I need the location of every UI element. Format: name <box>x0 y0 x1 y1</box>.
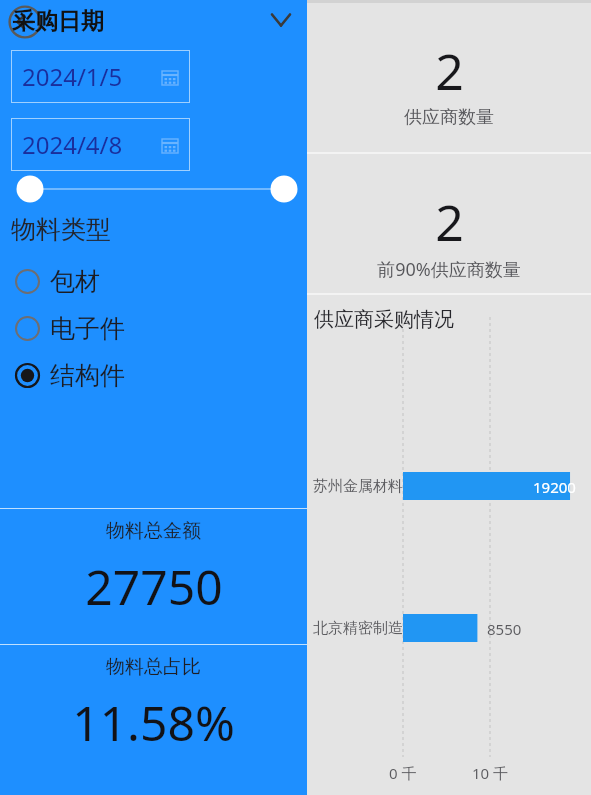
staticText: 19200 <box>533 477 576 497</box>
staticText: 北京精密制造 <box>313 619 403 638</box>
staticText: 电子件 <box>50 313 125 344</box>
staticText: 结构件 <box>50 360 125 391</box>
staticText: 27750 <box>85 554 223 619</box>
button[interactable]: 电子件 <box>0 305 307 352</box>
staticText: 采购日期 <box>12 7 104 36</box>
button[interactable]: 2024/4/8 <box>11 118 190 171</box>
staticText: 供应商数量 <box>404 106 494 129</box>
button[interactable]: 2024/1/5 <box>11 50 190 103</box>
staticText: 11.58% <box>72 690 235 755</box>
button[interactable]: 2 <box>307 154 591 293</box>
button[interactable]: 包材 <box>0 258 307 305</box>
staticText: 物料总占比 <box>106 655 201 679</box>
staticText: 0 千 <box>389 763 417 783</box>
staticText: 供应商采购情况 <box>314 307 454 332</box>
staticText: 物料总金额 <box>106 519 201 543</box>
staticText: 2 <box>435 37 464 105</box>
staticText: 2024/1/5 <box>22 60 123 93</box>
button[interactable]: 结构件 <box>0 352 307 399</box>
staticText: 2024/4/8 <box>22 128 123 161</box>
staticText: 8550 <box>487 619 522 639</box>
button[interactable]: Back <box>8 5 42 39</box>
staticText: 物料类型 <box>11 214 111 245</box>
button[interactable]: Collapse <box>267 6 295 34</box>
staticText: 包材 <box>50 266 100 297</box>
staticText: 苏州金属材料 <box>313 477 403 496</box>
staticText: 2 <box>435 188 464 256</box>
button[interactable]: 2 <box>307 3 591 152</box>
staticText: 10 千 <box>472 763 509 783</box>
staticText: 前90%供应商数量 <box>377 257 521 282</box>
